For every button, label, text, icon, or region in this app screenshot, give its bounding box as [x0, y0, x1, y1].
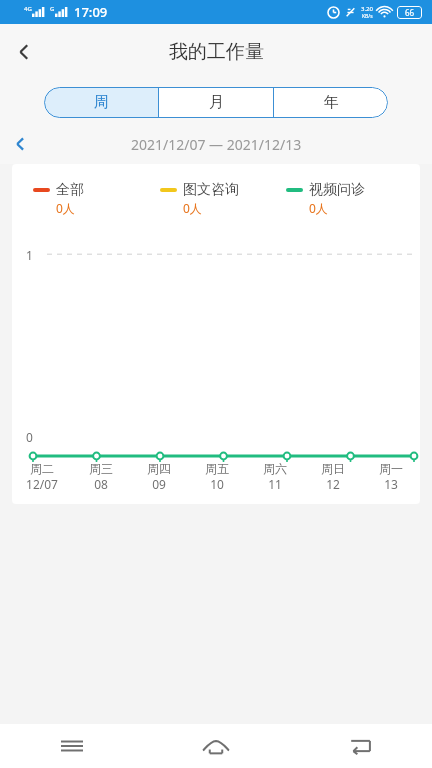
staticText: G [50, 5, 55, 13]
staticText: 年 [324, 93, 339, 112]
staticText: 66 [405, 7, 415, 18]
staticText: 0人 [183, 200, 202, 216]
staticText: 周 [94, 93, 109, 112]
staticText: 周二 [30, 461, 54, 476]
staticText: 08 [94, 476, 108, 492]
staticText: KB/s [362, 13, 373, 20]
staticText: 周三 [89, 461, 113, 476]
button[interactable]: 全部 [33, 181, 160, 216]
staticText: 12 [326, 476, 340, 492]
staticText: 13 [384, 476, 398, 492]
staticText: 3.20 [361, 5, 373, 13]
staticText: 1 [26, 247, 33, 263]
button[interactable]: 视频问诊 [286, 181, 412, 216]
button[interactable]: Home [144, 724, 288, 768]
button[interactable]: 图文咨询 [160, 181, 286, 216]
staticText: 0人 [309, 200, 328, 216]
button[interactable]: Back [288, 724, 432, 768]
staticText: 10 [210, 476, 224, 492]
staticText: 0人 [56, 200, 75, 216]
staticText: 09 [152, 476, 166, 492]
staticText: 11 [268, 476, 282, 492]
button[interactable]: 月 [159, 87, 273, 118]
staticText: 周六 [263, 461, 287, 476]
staticText: 周一 [379, 461, 403, 476]
staticText: 我的工作量 [169, 40, 264, 64]
staticText: 图文咨询 [183, 181, 239, 199]
staticText: 0 [26, 429, 33, 445]
staticText: 周日 [321, 461, 345, 476]
staticText: 月 [209, 93, 224, 112]
staticText: 17:09 [74, 3, 108, 21]
staticText: 12/07 [26, 476, 58, 492]
staticText: 2021/12/07 — 2021/12/13 [131, 135, 302, 154]
staticText: 全部 [56, 181, 84, 199]
button[interactable]: Recent apps [0, 724, 144, 768]
button[interactable]: Back [0, 28, 48, 76]
button[interactable]: 周 [44, 87, 158, 118]
button[interactable]: Previous week [2, 126, 38, 162]
staticText: 4G [24, 5, 32, 13]
button[interactable]: 年 [274, 87, 388, 118]
staticText: 视频问诊 [309, 181, 365, 199]
staticText: 周五 [205, 461, 229, 476]
staticText: 周四 [147, 461, 171, 476]
